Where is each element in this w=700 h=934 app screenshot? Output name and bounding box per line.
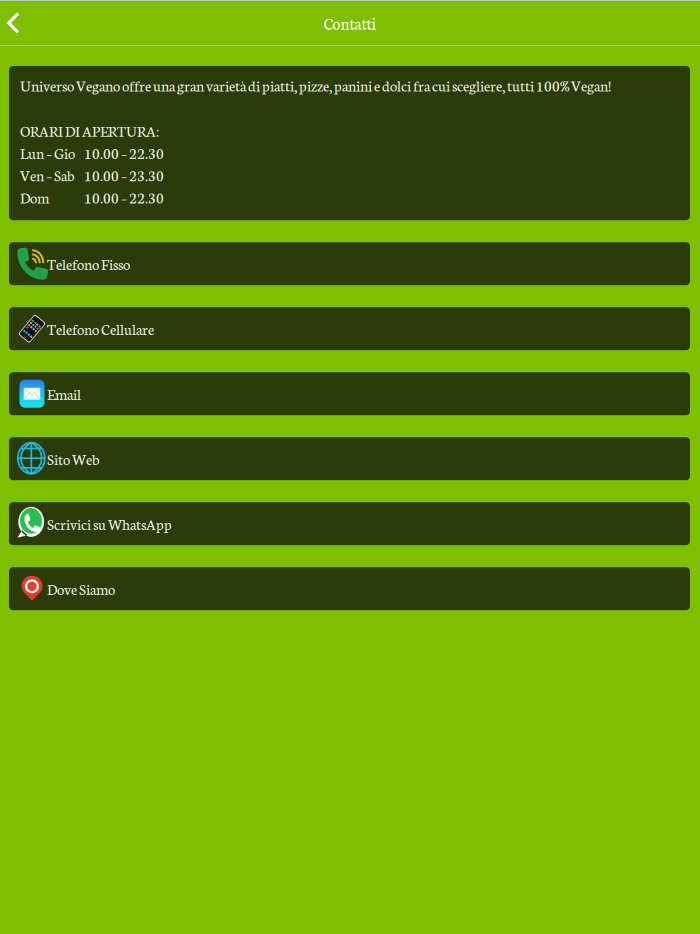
button[interactable]: Back [0, 1, 40, 45]
button[interactable]: Scrivici su WhatsApp [9, 502, 690, 545]
staticText: 10.00 – 22.30 [84, 142, 164, 163]
staticText: Scrivici su WhatsApp [47, 514, 172, 534]
staticText: Sito Web [47, 449, 99, 469]
staticText: Telefono Cellulare [47, 319, 154, 339]
staticText: Dom [20, 187, 49, 207]
button[interactable]: Telefono Cellulare [9, 307, 690, 350]
staticText: 10.00 – 22.30 [84, 187, 164, 207]
staticText: Universo Vegano offre una gran varietà d… [20, 75, 611, 95]
staticText: Ven – Sab [20, 165, 74, 185]
staticText: Email [47, 384, 81, 404]
staticText: ORARI DI APERTURA: [20, 120, 159, 140]
button[interactable]: Email [9, 372, 690, 415]
button[interactable]: Telefono Fisso [9, 242, 690, 285]
button[interactable]: Dove Siamo [9, 567, 690, 610]
staticText: Lun – Gio [20, 142, 75, 163]
button[interactable]: Sito Web [9, 437, 690, 480]
staticText: Contatti [323, 12, 376, 34]
staticText: 10.00 – 23.30 [84, 165, 164, 185]
staticText: Telefono Fisso [47, 254, 130, 274]
staticText: Dove Siamo [47, 579, 115, 599]
